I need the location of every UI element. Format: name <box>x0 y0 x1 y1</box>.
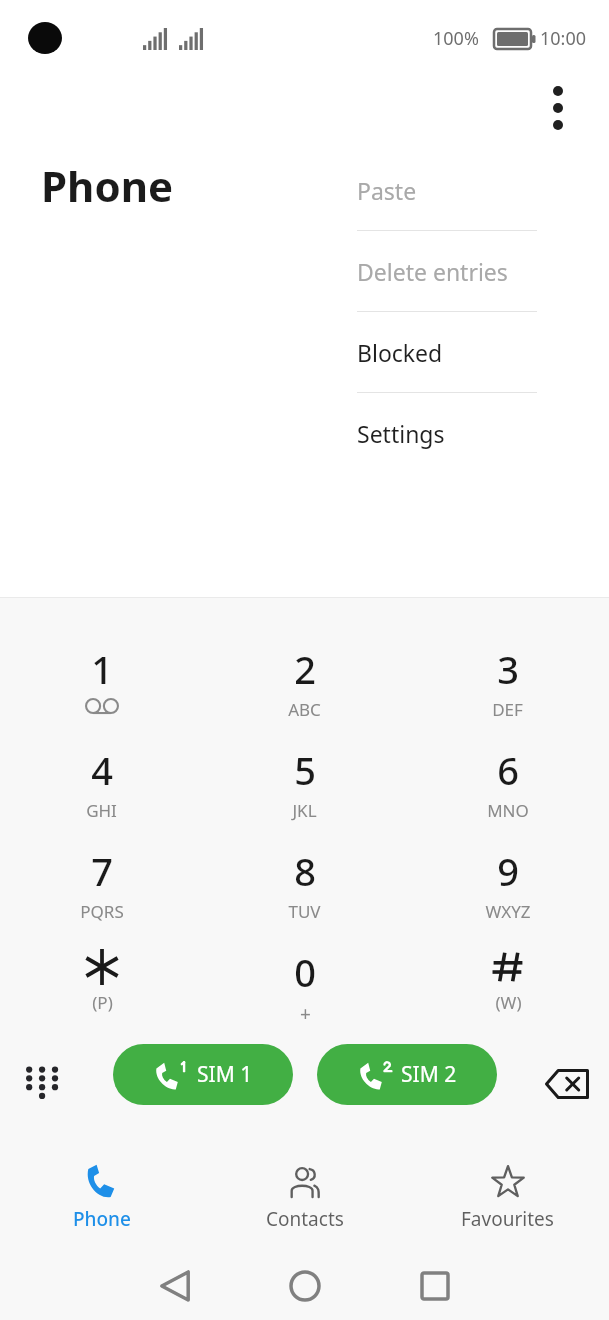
staticText: WXYZ <box>485 900 531 923</box>
button[interactable]: SIM 1 <box>113 1044 293 1105</box>
staticText: Blocked <box>357 337 443 368</box>
button[interactable]: 9 <box>406 825 609 926</box>
staticText: Phone <box>41 157 174 214</box>
staticText: Phone <box>73 1206 131 1232</box>
staticText: 2 <box>294 643 316 695</box>
staticText: ABC <box>288 698 321 721</box>
staticText: (P) <box>92 991 113 1014</box>
staticText: SIM 2 <box>401 1060 457 1089</box>
staticText: 7 <box>91 845 113 897</box>
staticText: 100% <box>433 26 479 51</box>
staticText: GHI <box>86 799 117 822</box>
button[interactable]: Settings <box>334 393 560 474</box>
staticText: Delete entries <box>357 256 508 287</box>
button[interactable]: Backspace <box>535 1055 599 1113</box>
staticText: DEF <box>492 698 523 721</box>
staticText: MNO <box>487 799 529 822</box>
button[interactable]: 1 <box>0 623 203 724</box>
button[interactable]: 5 <box>203 724 406 825</box>
button[interactable]: 0 <box>203 926 406 1027</box>
button[interactable]: Back <box>140 1260 210 1312</box>
button[interactable]: 2 <box>203 623 406 724</box>
staticText: 6 <box>497 744 519 796</box>
staticText: + <box>300 1001 311 1027</box>
button[interactable]: 6 <box>406 724 609 825</box>
staticText: Paste <box>357 175 417 206</box>
staticText: Favourites <box>461 1206 554 1232</box>
staticText: Settings <box>357 418 445 449</box>
button[interactable]: Phone <box>0 1142 203 1252</box>
staticText: SIM 1 <box>197 1060 253 1089</box>
staticText: Contacts <box>266 1206 344 1232</box>
staticText: 3 <box>497 643 519 695</box>
staticText: 8 <box>294 845 316 897</box>
button[interactable]: Paste <box>334 150 560 231</box>
staticText: (W) <box>495 991 522 1014</box>
staticText: 0 <box>294 946 316 998</box>
staticText: 4 <box>91 744 113 796</box>
button[interactable]: Blocked <box>334 312 560 393</box>
button[interactable]: 8 <box>203 825 406 926</box>
staticText: 9 <box>497 845 519 897</box>
button[interactable]: Delete entries <box>334 231 560 312</box>
button[interactable]: (P) <box>0 926 203 1027</box>
staticText: PQRS <box>80 900 124 923</box>
staticText: JKL <box>292 799 317 822</box>
button[interactable]: SIM 2 <box>317 1044 497 1105</box>
button[interactable]: Favourites <box>406 1142 609 1252</box>
button[interactable]: 3 <box>406 623 609 724</box>
staticText: 5 <box>294 744 316 796</box>
button[interactable]: 7 <box>0 825 203 926</box>
button[interactable]: More options <box>528 72 588 144</box>
button[interactable]: Home <box>270 1260 340 1312</box>
button[interactable]: Recents <box>400 1260 470 1312</box>
staticText: 10:00 <box>540 26 587 51</box>
button[interactable]: Contacts <box>203 1142 406 1252</box>
button[interactable]: (W) <box>406 926 609 1027</box>
button[interactable]: Keypad <box>8 1053 73 1115</box>
staticText: TUV <box>288 900 321 923</box>
button[interactable]: 4 <box>0 724 203 825</box>
staticText: 1 <box>91 643 113 695</box>
